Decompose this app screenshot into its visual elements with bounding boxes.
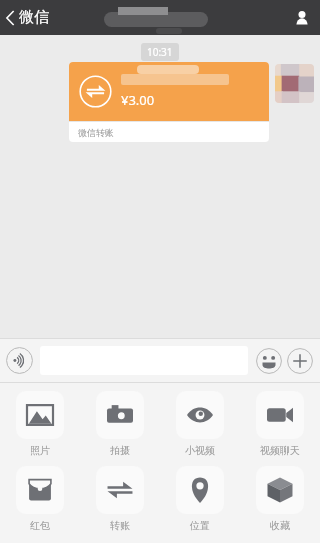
staticText: 10:31 <box>147 45 173 59</box>
button[interactable]: 收藏 <box>244 466 316 532</box>
button[interactable]: Voice input <box>5 346 34 375</box>
button[interactable]: Contact profile <box>284 4 320 32</box>
staticText: 微信 <box>19 8 49 27</box>
button[interactable]: Avatar <box>275 64 314 103</box>
staticText: 收藏 <box>270 519 290 532</box>
button[interactable]: ¥3.00 <box>69 62 269 142</box>
staticText: ¥3.00 <box>121 91 155 109</box>
button[interactable]: More functions <box>285 346 314 375</box>
button[interactable]: 红包 <box>4 466 76 532</box>
staticText: 视频聊天 <box>260 444 300 457</box>
staticText: 红包 <box>30 519 50 532</box>
staticText: 拍摄 <box>110 444 130 457</box>
button[interactable]: 拍摄 <box>84 391 156 457</box>
staticText: 位置 <box>190 519 210 532</box>
staticText: 照片 <box>30 444 50 457</box>
button[interactable]: 位置 <box>164 466 236 532</box>
button[interactable]: 小视频 <box>164 391 236 457</box>
staticText: 小视频 <box>185 444 215 457</box>
button[interactable]: 照片 <box>4 391 76 457</box>
staticText: 转账 <box>110 519 130 532</box>
button[interactable]: 视频聊天 <box>244 391 316 457</box>
staticText: 微信转账 <box>78 127 114 138</box>
button[interactable]: 转账 <box>84 466 156 532</box>
button[interactable]: Back to WeChat <box>0 4 57 31</box>
button[interactable]: Emoji <box>254 346 283 375</box>
